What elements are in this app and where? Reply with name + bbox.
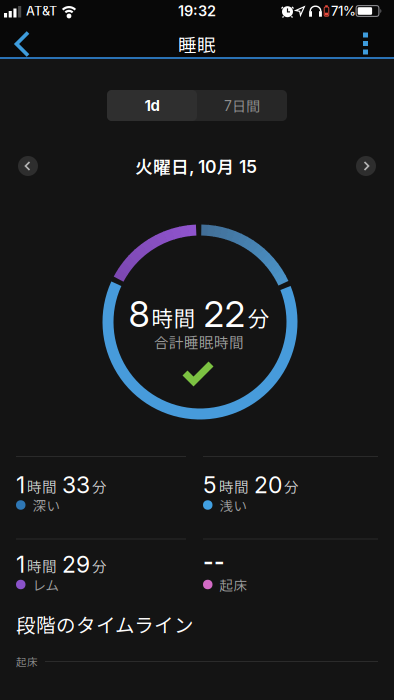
staticText: 起床 (16, 654, 38, 669)
button[interactable]: More options (343, 21, 387, 65)
staticText: 起床 (219, 575, 247, 594)
staticText: 7日間 (224, 96, 260, 115)
staticText: 火曜日, 10月 15 (135, 154, 257, 178)
staticText: 33 (62, 471, 90, 498)
staticText: 分 (92, 556, 107, 576)
staticText: 29 (62, 551, 90, 578)
staticText: 分 (92, 476, 107, 497)
staticText: 22 (203, 293, 245, 335)
staticText: 1 (16, 471, 25, 498)
staticText: 時間 (27, 476, 57, 497)
staticText: 1 (16, 551, 25, 578)
staticText: 8 (128, 293, 149, 335)
button[interactable]: Back (0, 22, 44, 66)
staticText: AT&T (26, 4, 57, 18)
button[interactable]: Next day (356, 156, 376, 176)
button[interactable]: 7日間 (197, 90, 287, 121)
staticText: -- (203, 548, 225, 575)
staticText: 分 (247, 302, 269, 332)
staticText: 1d (144, 97, 159, 114)
staticText: 時間 (27, 556, 57, 576)
staticText: 分 (284, 476, 299, 497)
staticText: 時間 (151, 302, 195, 332)
staticText: 浅い (219, 495, 247, 515)
staticText: レム (32, 575, 59, 594)
staticText: 71% (331, 3, 356, 19)
staticText: 20 (254, 471, 282, 498)
staticText: 時間 (219, 476, 249, 497)
button[interactable]: 1d (107, 90, 197, 121)
staticText: 5 (203, 471, 217, 498)
staticText: 19:32 (178, 2, 216, 19)
staticText: 深い (32, 495, 60, 515)
staticText: 合計睡眠時間 (154, 332, 244, 352)
button[interactable]: Previous day (18, 156, 38, 176)
staticText: 睡眠 (178, 31, 216, 57)
staticText: 段階のタイムライン (16, 610, 194, 638)
